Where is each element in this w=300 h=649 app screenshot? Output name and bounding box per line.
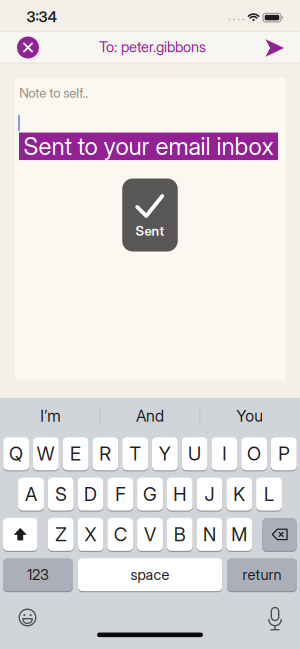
button[interactable]: F: [107, 478, 133, 511]
button[interactable]: V: [137, 518, 163, 551]
button[interactable]: E: [63, 437, 88, 470]
staticText: K: [233, 483, 245, 505]
button[interactable]: B: [167, 518, 193, 551]
staticText: 123: [27, 566, 49, 583]
button[interactable]: [3, 518, 37, 551]
staticText: return: [242, 566, 281, 583]
staticText: I’m: [40, 407, 60, 425]
staticText: P: [278, 443, 289, 465]
staticText: L: [264, 483, 274, 505]
staticText: R: [99, 443, 111, 465]
button[interactable]: Z: [48, 518, 74, 551]
button[interactable]: A: [18, 478, 44, 511]
staticText: Sent: [135, 223, 164, 239]
button[interactable]: H: [167, 478, 193, 511]
staticText: Z: [55, 523, 66, 545]
button[interactable]: C: [107, 518, 133, 551]
button[interactable]: U: [182, 437, 207, 470]
staticText: Note to self..: [19, 85, 88, 101]
staticText: I: [222, 443, 226, 465]
staticText: U: [188, 443, 201, 465]
staticText: V: [144, 523, 156, 545]
button[interactable]: I’m: [1, 398, 100, 433]
button[interactable]: I: [211, 437, 237, 470]
button[interactable]: D: [78, 478, 103, 511]
button[interactable]: You: [200, 398, 299, 433]
staticText: C: [114, 523, 127, 545]
button[interactable]: K: [226, 478, 252, 511]
staticText: M: [231, 523, 247, 545]
staticText: H: [173, 483, 186, 505]
button[interactable]: G: [137, 478, 163, 511]
button[interactable]: space: [78, 558, 222, 591]
button[interactable]: 123: [3, 558, 73, 591]
staticText: D: [84, 483, 97, 505]
button[interactable]: O: [241, 437, 267, 470]
button[interactable]: Y: [152, 437, 178, 470]
staticText: O: [247, 443, 261, 465]
button[interactable]: M: [226, 518, 252, 551]
staticText: space: [130, 566, 169, 583]
staticText: F: [115, 483, 125, 505]
staticText: You: [236, 407, 263, 425]
staticText: A: [25, 483, 37, 505]
staticText: Y: [159, 443, 171, 465]
button[interactable]: R: [92, 437, 118, 470]
button[interactable]: return: [227, 558, 297, 591]
button[interactable]: [264, 606, 286, 632]
staticText: W: [37, 443, 55, 465]
button[interactable]: W: [33, 437, 59, 470]
button[interactable]: J: [197, 478, 222, 511]
button[interactable]: L: [256, 478, 282, 511]
staticText: E: [70, 443, 81, 465]
staticText: T: [130, 443, 141, 465]
staticText: Q: [9, 443, 23, 465]
button[interactable]: P: [271, 437, 297, 470]
staticText: 3:34: [26, 8, 56, 26]
staticText: B: [174, 523, 186, 545]
button[interactable]: Q: [3, 437, 29, 470]
button[interactable]: [16, 606, 38, 628]
button[interactable]: T: [122, 437, 148, 470]
button[interactable]: S: [48, 478, 74, 511]
button[interactable]: X: [78, 518, 103, 551]
staticText: N: [203, 523, 216, 545]
button[interactable]: And: [100, 398, 199, 433]
staticText: Sent to your email inbox: [23, 132, 273, 160]
button[interactable]: [262, 518, 297, 551]
button[interactable]: [262, 36, 286, 60]
staticText: To: peter.gibbons: [99, 38, 206, 56]
staticText: And: [136, 407, 164, 425]
staticText: X: [84, 523, 96, 545]
staticText: G: [143, 483, 157, 505]
button[interactable]: N: [197, 518, 222, 551]
staticText: S: [55, 483, 66, 505]
button[interactable]: [17, 36, 39, 58]
staticText: J: [204, 483, 214, 505]
